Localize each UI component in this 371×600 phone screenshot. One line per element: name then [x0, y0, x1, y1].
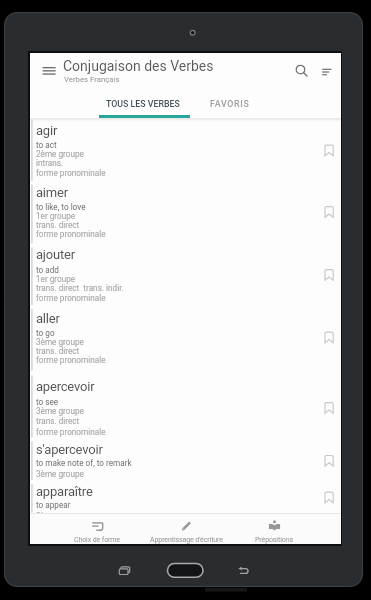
staticText: trans. direct	[36, 416, 80, 426]
button[interactable]	[30, 442, 341, 481]
button[interactable]	[314, 57, 341, 85]
staticText: ajouter	[36, 247, 75, 262]
button[interactable]	[164, 558, 207, 581]
staticText: trans. direct trans. indir.	[36, 283, 124, 293]
staticText: Verbes Français	[64, 75, 120, 84]
staticText: to like, to love	[36, 202, 86, 212]
staticText: 1er groupe	[36, 211, 76, 221]
staticText: to add	[36, 265, 59, 275]
button[interactable]: TOUS LES VERBES	[97, 91, 188, 117]
staticText: apparaître	[36, 484, 93, 499]
button[interactable]	[30, 185, 341, 244]
staticText: TOUS LES VERBES	[106, 99, 180, 109]
button[interactable]	[288, 57, 316, 85]
staticText: trans. direct	[36, 346, 80, 356]
button[interactable]	[234, 560, 258, 580]
staticText: intrans.	[36, 158, 64, 168]
staticText: aller	[36, 311, 60, 326]
staticText: 1er groupe	[36, 274, 76, 284]
staticText: forme pronominale	[36, 168, 106, 178]
staticText: 3ème groupe	[36, 337, 84, 347]
staticText: 2ème groupe	[36, 149, 84, 159]
button[interactable]	[30, 376, 341, 438]
staticText: Prépositions	[255, 536, 293, 544]
button[interactable]	[30, 309, 341, 371]
staticText: 3ème groupe	[36, 511, 84, 521]
button[interactable]	[30, 248, 341, 306]
staticText: forme pronominale	[36, 293, 106, 303]
staticText: to go	[36, 328, 55, 338]
button[interactable]	[30, 120, 341, 181]
staticText: forme pronominale	[36, 229, 106, 239]
button[interactable]: Apprentissage d'écriture	[140, 513, 232, 544]
staticText: apercevoir	[36, 379, 95, 394]
staticText: Conjugaison des Verbes	[63, 58, 214, 74]
staticText: to see	[36, 397, 59, 407]
button[interactable]	[112, 560, 136, 580]
staticText: trans. direct	[36, 220, 80, 230]
staticText: Choix de forme	[74, 536, 120, 544]
button[interactable]	[37, 57, 63, 83]
staticText: 3ème groupe	[36, 469, 84, 479]
button[interactable]: Choix de forme	[51, 513, 143, 544]
staticText: agir	[36, 123, 58, 138]
staticText: to act	[36, 140, 57, 150]
staticText: to make note of, to remark	[36, 458, 132, 468]
staticText: FAVORIS	[210, 99, 250, 109]
button[interactable]: FAVORIS	[184, 91, 275, 117]
staticText: forme pronominale	[36, 427, 106, 437]
staticText: to appear	[36, 500, 71, 510]
staticText: aimer	[36, 185, 68, 200]
button[interactable]: Prépositions	[228, 513, 320, 544]
button[interactable]	[30, 484, 341, 513]
staticText: s'apercevoir	[36, 442, 103, 457]
staticText: 3ème groupe	[36, 406, 84, 416]
staticText: forme pronominale	[36, 355, 106, 365]
staticText: Apprentissage d'écriture	[150, 536, 223, 544]
